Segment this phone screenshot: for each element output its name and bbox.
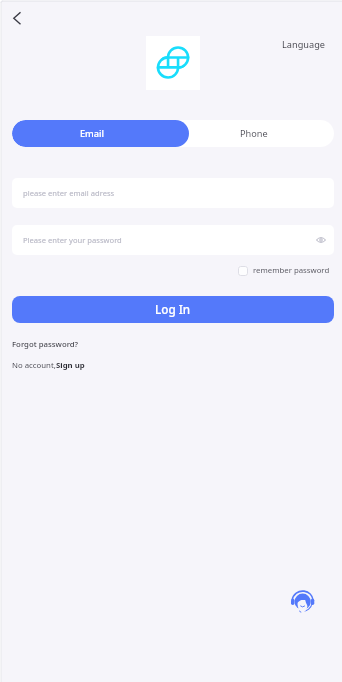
button[interactable]: remember password <box>234 261 334 280</box>
staticText: Please enter your password <box>23 235 122 245</box>
staticText: Language <box>282 38 325 51</box>
staticText: No account, <box>12 360 56 371</box>
staticText: Email <box>80 127 105 140</box>
button[interactable]: Phone <box>173 120 334 147</box>
button[interactable]: No account, <box>7 356 90 375</box>
button[interactable]: Forgot password? <box>7 335 84 354</box>
button[interactable]: Customer support <box>289 588 317 616</box>
button[interactable]: Back <box>4 6 32 34</box>
staticText: Phone <box>240 127 268 140</box>
staticText: please enter email adress <box>23 188 115 198</box>
button[interactable]: Please enter your password <box>12 225 334 255</box>
staticText: Forgot password? <box>12 339 79 350</box>
staticText: Sign up <box>56 360 85 371</box>
button[interactable]: Log In <box>12 296 334 323</box>
button[interactable]: Show password <box>312 231 330 249</box>
staticText: remember password <box>253 265 330 276</box>
button[interactable]: please enter email adress <box>12 178 334 208</box>
button[interactable]: Language <box>276 33 331 56</box>
staticText: Log In <box>155 301 191 317</box>
button[interactable]: Email <box>12 120 173 147</box>
